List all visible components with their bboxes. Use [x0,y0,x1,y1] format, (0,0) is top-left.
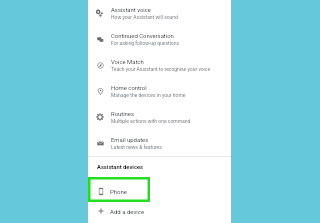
button[interactable]: Routines [88,106,231,128]
staticText: Multiple actions with one command [111,118,191,124]
staticText: For asking follow-up questions [111,40,180,46]
button[interactable]: Voice Match [88,54,231,76]
staticText: Routines [111,111,135,118]
staticText: Latest news & features [111,144,162,150]
staticText: Teach your Assistant to recognise your v… [111,66,211,72]
staticText: Email updates [111,137,149,144]
button[interactable]: Email updates [88,132,231,154]
staticText: Add a device [110,208,145,215]
staticText: Manage the devices in your home [111,92,186,98]
button[interactable]: Phone [88,184,231,198]
button[interactable]: Assistant voice [88,2,231,24]
button[interactable]: Add a device [88,204,231,218]
staticText: Home control [111,85,147,92]
button[interactable]: Home control [88,80,231,102]
button[interactable]: Continued Conversation [88,28,231,50]
staticText: Assistant devices [97,164,144,171]
staticText: How your Assistant will sound [111,14,178,20]
staticText: Phone [110,188,128,195]
staticText: Continued Conversation [111,33,174,40]
staticText: Voice Match [111,59,144,66]
staticText: Assistant voice [111,7,151,14]
